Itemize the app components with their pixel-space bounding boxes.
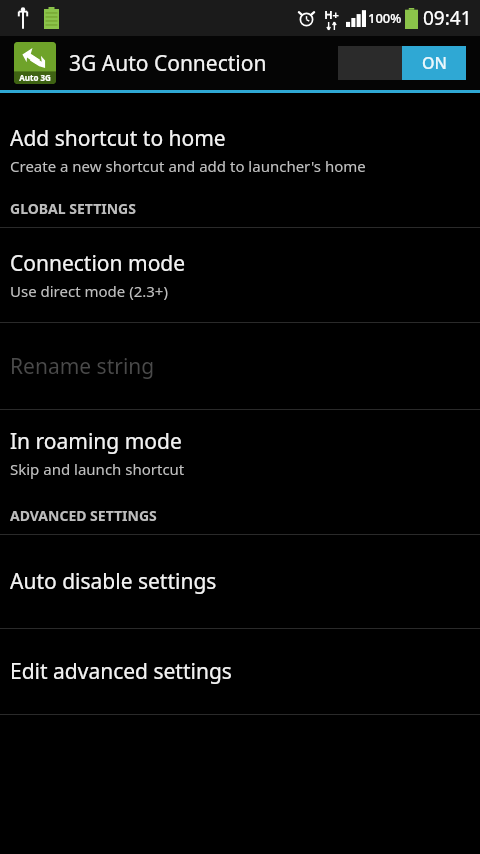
staticText: Add shortcut to home (10, 124, 226, 153)
staticText: Connection mode (10, 249, 186, 278)
staticText: 100% (368, 9, 402, 27)
button[interactable]: Auto disable settings (0, 535, 480, 628)
staticText: 3G Auto Connection (69, 49, 267, 78)
staticText: GLOBAL SETTINGS (10, 199, 136, 218)
button[interactable]: Connection mode (0, 228, 480, 322)
staticText: ON (422, 52, 447, 74)
staticText: ADVANCED SETTINGS (10, 506, 157, 525)
staticText: Use direct mode (2.3+) (10, 281, 168, 301)
staticText: Skip and launch shortcut (10, 459, 185, 479)
staticText: Create a new shortcut and add to launche… (10, 156, 366, 176)
staticText: Edit advanced settings (10, 657, 232, 686)
button[interactable]: Edit advanced settings (0, 629, 480, 714)
button[interactable]: Toggle 3G Auto Connection on or off (338, 46, 466, 80)
button[interactable]: Add shortcut to home (0, 111, 480, 189)
staticText: 09:41 (423, 5, 472, 31)
button: Rename string (0, 323, 480, 409)
staticText: Auto disable settings (10, 567, 217, 596)
staticText: Rename string (10, 352, 155, 381)
staticText: Auto 3G (19, 72, 51, 83)
staticText: In roaming mode (10, 427, 182, 456)
button[interactable]: In roaming mode (0, 410, 480, 496)
staticText: H+ (324, 7, 339, 22)
